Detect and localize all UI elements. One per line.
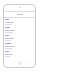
button[interactable] — [5, 27, 36, 35]
button[interactable] — [5, 51, 36, 58]
button[interactable] — [5, 19, 36, 27]
button[interactable] — [5, 35, 36, 43]
button[interactable] — [5, 43, 36, 51]
